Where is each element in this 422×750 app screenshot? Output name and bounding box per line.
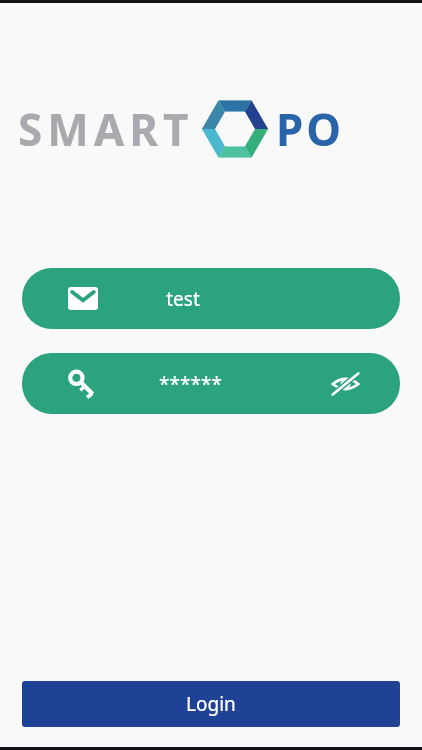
button[interactable]: Email	[22, 268, 400, 329]
button[interactable]: Password	[22, 353, 400, 414]
staticText: SMART	[18, 99, 194, 159]
staticText: Login	[186, 691, 236, 717]
button[interactable]: Login	[22, 681, 400, 727]
staticText: test	[166, 286, 200, 312]
other: Email	[68, 287, 98, 310]
staticText: ******	[159, 371, 222, 397]
other: Password	[68, 370, 96, 398]
staticText: PO	[276, 99, 345, 159]
button[interactable]: Show password	[330, 369, 360, 399]
